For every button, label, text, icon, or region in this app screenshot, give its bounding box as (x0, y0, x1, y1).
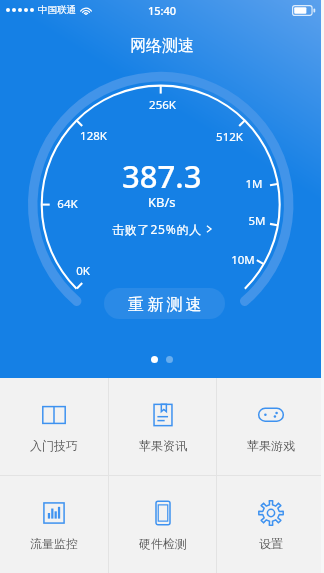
staticText: 苹果资讯 (139, 438, 187, 453)
staticText: KB/s (148, 193, 176, 211)
button[interactable]: 苹果资讯 (109, 378, 216, 475)
staticText: 苹果游戏 (247, 438, 295, 453)
staticText: 网络测速 (130, 36, 194, 56)
button[interactable]: 入门技巧 (0, 378, 108, 475)
staticText: 设置 (259, 536, 283, 551)
button[interactable]: 设置 (217, 476, 324, 573)
staticText: 1M (245, 176, 263, 192)
staticText: 入门技巧 (30, 438, 78, 453)
staticText: 10M (231, 252, 255, 268)
staticText: 387.3 (122, 155, 202, 197)
staticText: 0K (76, 263, 90, 279)
staticText: 15:40 (148, 3, 177, 18)
staticText: 重新测速 (128, 295, 205, 315)
staticText: 64K (57, 196, 78, 212)
staticText: 128K (80, 128, 107, 144)
staticText: 5M (248, 213, 266, 229)
staticText: 256K (149, 97, 176, 113)
staticText: 流量监控 (30, 536, 78, 551)
staticText: 中国联通 (38, 4, 76, 16)
button[interactable]: 硬件检测 (109, 476, 216, 573)
staticText: 512K (216, 129, 243, 145)
button[interactable]: 击败了25%的人 (112, 221, 212, 237)
button[interactable]: 重新测速 (104, 288, 225, 319)
button[interactable]: 苹果游戏 (217, 378, 324, 475)
staticText: 击败了25%的人 (112, 221, 203, 237)
button[interactable]: 流量监控 (0, 476, 108, 573)
staticText: 硬件检测 (139, 536, 187, 551)
